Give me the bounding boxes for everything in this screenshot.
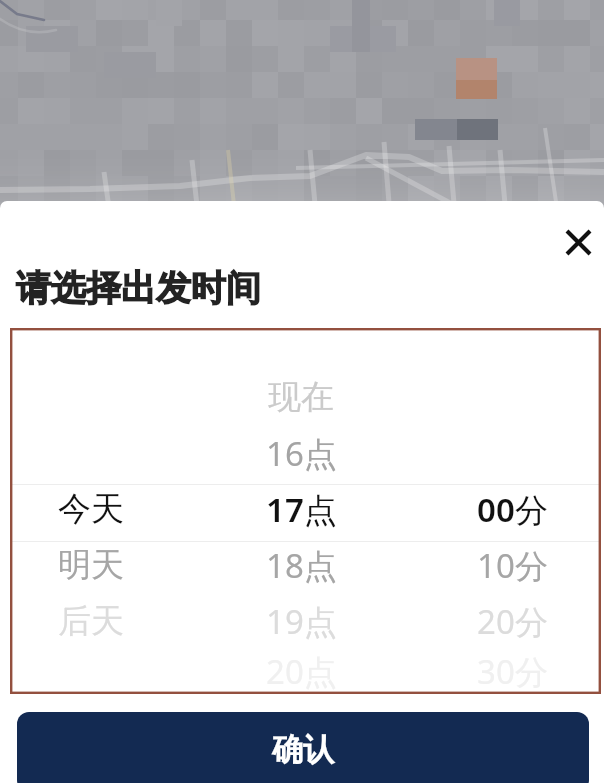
button[interactable]: 17点 <box>172 481 430 537</box>
staticText: 确认 <box>272 730 334 769</box>
staticText: 明天 <box>58 544 124 586</box>
staticText: 20点 <box>266 649 337 694</box>
staticText: 18点 <box>266 543 337 588</box>
button[interactable]: 今天 <box>10 481 172 537</box>
button[interactable]: 后天 <box>10 593 172 649</box>
button[interactable] <box>10 369 172 425</box>
staticText: 20分 <box>477 599 548 644</box>
button[interactable]: 20点 <box>172 649 430 694</box>
button[interactable]: 18点 <box>172 537 430 593</box>
staticText: 17点 <box>266 487 337 532</box>
staticText: 后天 <box>58 600 124 642</box>
button[interactable]: 20分 <box>430 593 594 649</box>
staticText: 10分 <box>477 543 548 588</box>
button[interactable]: 30分 <box>430 649 594 694</box>
staticText: 30分 <box>477 649 548 694</box>
staticText: 请选择出发时间 <box>16 266 261 310</box>
staticText: 16点 <box>266 431 337 476</box>
staticText: 现在 <box>268 376 334 418</box>
button[interactable]: 19点 <box>172 593 430 649</box>
button[interactable] <box>10 425 172 481</box>
button[interactable]: 00分 <box>430 481 594 537</box>
button[interactable]: 确认 <box>17 712 589 783</box>
button[interactable]: 现在 <box>172 369 430 425</box>
button[interactable]: 明天 <box>10 537 172 593</box>
button[interactable]: 16点 <box>172 425 430 481</box>
button[interactable] <box>10 649 172 694</box>
staticText: 今天 <box>58 488 124 530</box>
button[interactable]: Close <box>554 218 602 266</box>
staticText: 00分 <box>477 487 548 532</box>
button[interactable]: 10分 <box>430 537 594 593</box>
staticText: 19点 <box>266 599 337 644</box>
